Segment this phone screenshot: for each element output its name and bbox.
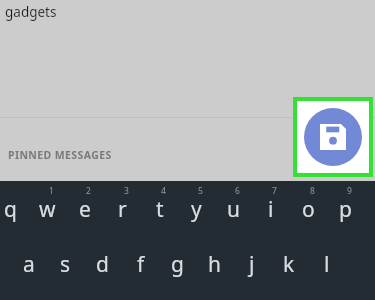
staticText: 4 <box>161 185 166 197</box>
button[interactable]: 1 <box>29 181 66 233</box>
staticText: gadgets <box>5 3 57 21</box>
button[interactable]: q <box>0 181 29 233</box>
button[interactable]: 5 <box>178 181 215 233</box>
staticText: y <box>191 195 202 224</box>
button[interactable]: 3 <box>104 181 141 233</box>
button[interactable]: 2 <box>66 181 103 233</box>
button[interactable]: s <box>47 236 84 288</box>
staticText: o <box>302 195 315 224</box>
staticText: r <box>118 195 127 224</box>
button[interactable]: 9 <box>327 181 364 233</box>
staticText: e <box>79 195 91 224</box>
staticText: 1 <box>49 185 54 197</box>
staticText: p <box>339 195 352 224</box>
button[interactable]: 4 <box>141 181 178 233</box>
staticText: i <box>268 195 274 224</box>
button[interactable]: 7 <box>252 181 289 233</box>
button[interactable]: g <box>159 236 196 288</box>
staticText: l <box>324 250 330 279</box>
staticText: t <box>156 195 164 224</box>
staticText: 2 <box>86 185 91 197</box>
staticText: q <box>4 195 17 224</box>
button[interactable]: h <box>196 236 233 288</box>
staticText: d <box>96 250 109 279</box>
button[interactable]: 8 <box>290 181 327 233</box>
button[interactable]: j <box>233 236 270 288</box>
button[interactable]: d <box>84 236 121 288</box>
staticText: a <box>23 250 35 279</box>
staticText: u <box>227 195 240 224</box>
staticText: 5 <box>198 185 203 197</box>
staticText: 3 <box>124 185 129 197</box>
staticText: f <box>137 250 145 279</box>
staticText: 8 <box>310 185 315 197</box>
button[interactable]: k <box>270 236 307 288</box>
button[interactable]: 6 <box>215 181 252 233</box>
staticText: s <box>60 250 71 279</box>
staticText: g <box>171 250 184 279</box>
staticText: w <box>39 195 56 224</box>
staticText: 7 <box>272 185 277 197</box>
button[interactable]: a <box>10 236 47 288</box>
staticText: h <box>208 250 221 279</box>
staticText: 9 <box>347 185 352 197</box>
button[interactable]: f <box>122 236 159 288</box>
button[interactable]: l <box>308 236 345 288</box>
staticText: j <box>249 250 255 279</box>
button[interactable]: Save <box>297 101 369 173</box>
staticText: PINNED MESSAGES <box>8 148 112 162</box>
staticText: 6 <box>235 185 240 197</box>
staticText: k <box>283 250 295 279</box>
